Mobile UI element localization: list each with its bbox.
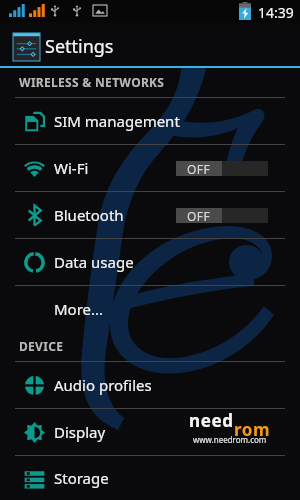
staticText: Data usage (54, 252, 134, 272)
button[interactable]: Bluetooth (0, 192, 300, 238)
button[interactable]: Storage (0, 456, 300, 500)
button[interactable]: OFF (176, 161, 268, 176)
staticText: Storage (54, 468, 109, 488)
button[interactable]: Wi-Fi (0, 145, 300, 191)
staticText: Bluetooth (54, 205, 124, 225)
button[interactable]: OFF (176, 208, 268, 223)
button[interactable]: Display (0, 409, 300, 455)
button[interactable]: Audio profiles (0, 362, 300, 408)
staticText: 14:39 (258, 3, 294, 22)
staticText: need (189, 409, 234, 432)
button[interactable]: More... (0, 286, 300, 332)
button[interactable]: SIM management (0, 98, 300, 144)
staticText: More... (54, 299, 104, 319)
other: Settings (13, 33, 40, 61)
staticText: Settings (45, 34, 114, 59)
staticText: WIRELESS & NETWORKS (19, 74, 165, 90)
staticText: OFF (187, 208, 211, 223)
staticText: www.needrom.com (193, 434, 267, 445)
staticText: Wi-Fi (54, 158, 89, 178)
staticText: rom (234, 418, 271, 441)
button[interactable]: Data usage (0, 239, 300, 285)
staticText: SIM management (54, 111, 180, 131)
staticText: Display (54, 422, 106, 442)
button[interactable]: Settings (0, 23, 300, 66)
staticText: OFF (187, 161, 211, 176)
staticText: Audio profiles (54, 375, 152, 395)
staticText: DEVICE (19, 338, 64, 354)
